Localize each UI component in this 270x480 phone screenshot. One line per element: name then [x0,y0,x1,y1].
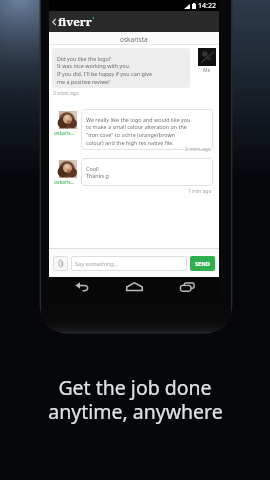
staticText: oskaris... [54,179,75,186]
button[interactable]: Did you like the logo? It was nice worki… [52,48,190,88]
staticText: fiverr [58,14,92,30]
button[interactable]: Say something... [71,256,187,271]
staticText: 14:22 [198,1,216,11]
staticText: Get the job done [58,374,212,401]
button[interactable]: SEND [190,256,215,271]
button[interactable]: oskarista [49,32,219,44]
button[interactable]: Back [49,11,219,32]
staticText: 5 mins ago [53,90,79,97]
staticText: Me [203,67,211,74]
staticText: Did you like the logo? It was nice worki… [57,55,152,86]
button[interactable]: Recent apps [167,277,207,296]
staticText: 1 min ago [188,188,212,195]
button[interactable]: Back [62,277,102,296]
button[interactable]: We really like the logo and would like y… [81,109,213,150]
staticText: anytime, anywhere [48,398,223,425]
staticText: oskaris... [54,130,75,137]
staticText: Say something... [75,260,119,268]
staticText: oskarista [120,35,148,44]
staticText: Cool! Thanks g [86,165,109,180]
button[interactable]: Cool! Thanks g [81,158,213,186]
other: Back [52,18,56,26]
staticText: We really like the logo and would like y… [86,116,191,147]
button[interactable]: Home [114,277,154,296]
staticText: SEND [195,260,210,268]
button[interactable]: Attach file [53,256,68,271]
staticText: 3 mins ago [185,146,211,153]
staticText: ’ [92,14,95,26]
